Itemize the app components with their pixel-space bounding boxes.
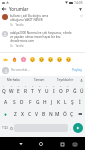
button[interactable]: Ö [61,108,68,120]
staticText: X [21,111,24,118]
button[interactable]: Filter [77,6,83,12]
staticText: P [66,88,69,95]
staticText: A [4,99,8,106]
button[interactable]: N [47,108,54,120]
button[interactable]: Pray [65,56,71,62]
button[interactable]: Ş [69,96,76,108]
staticText: 1 [3,85,5,88]
button[interactable]: F [26,96,34,108]
staticText: 7 [46,85,48,88]
staticText: M [55,111,60,118]
button[interactable]: Tamam [26,76,52,84]
button[interactable]: 3 [15,84,22,96]
button[interactable]: S [10,96,18,108]
staticText: 2 [11,85,13,88]
button[interactable]: Send [73,123,83,133]
button[interactable]: Sad [56,56,62,62]
button[interactable]: K [55,96,62,108]
staticText: J [51,99,53,106]
button[interactable]: Shift [0,108,11,120]
button[interactable]: Paylaş [71,66,83,74]
staticText: Ü [80,88,84,95]
staticText: Teşekkürler [57,78,74,82]
button[interactable]: 8 [50,84,57,96]
staticText: kullanici_adi Bu doğru ama [10,14,49,18]
staticText: Y [38,88,41,95]
button[interactable]: 2 [8,84,15,96]
button[interactable]: Switch keyboard [70,139,80,149]
button[interactable]: Voice input [78,76,85,84]
button[interactable]: A [2,96,10,108]
staticText: L [64,99,67,106]
button[interactable]: Ç [68,108,75,120]
button[interactable]: Joy [38,56,44,62]
button[interactable]: Ğ [71,84,78,96]
staticText: ve yapılan olmaz insan hayat bir kez [10,35,61,39]
staticText: B [42,111,46,118]
staticText: ilinadirrsiniz.com [10,39,35,43]
staticText: E [17,88,20,95]
button[interactable]: L [62,96,69,108]
button[interactable]: Recent apps [57,139,67,149]
staticText: Paylaş [72,68,82,72]
button[interactable]: İ [76,96,83,108]
staticText: . [70,126,71,131]
button[interactable]: 7 [43,84,50,96]
button[interactable]: H [41,96,48,108]
staticText: G [36,99,40,106]
staticText: T [31,88,34,95]
staticText: Ş [71,99,74,106]
button[interactable]: J [48,96,55,108]
button[interactable]: D [18,96,26,108]
button[interactable]: Backspace [75,108,85,120]
staticText: O [59,88,63,95]
button[interactable]: 1 [0,84,8,96]
button[interactable]: C [26,108,33,120]
staticText: D [20,99,24,106]
button[interactable]: 5 [29,84,36,96]
staticText: K [57,99,61,106]
button[interactable]: Ü [78,84,85,96]
button[interactable]: G [34,96,41,108]
button[interactable]: V [33,108,40,120]
button[interactable]: 4 [22,84,29,96]
button[interactable]: Teşekkürler [52,76,78,84]
staticText: H [43,99,47,106]
button[interactable]: M [54,108,61,120]
button[interactable]: 6 [36,84,43,96]
button[interactable]: Blossom [20,56,26,62]
staticText: 14:05 [74,0,83,5]
button[interactable]: Emoji [9,121,14,135]
button[interactable]: Surprised [47,56,53,62]
staticText: Ç [70,111,74,118]
staticText: 4 [25,85,27,88]
button[interactable]: Merhaba [0,76,26,84]
button[interactable]: ?123 [1,121,9,135]
button[interactable]: Hide keyboard [16,139,26,149]
button[interactable]: 9 [57,84,64,96]
button[interactable]: Fire [11,56,17,62]
button[interactable]: B [40,108,47,120]
staticText: U [45,88,49,95]
button[interactable]: 0 [64,84,71,96]
button[interactable]: Heart eyes [29,56,35,62]
button[interactable]: X [19,108,26,120]
button[interactable]: Home [36,139,46,149]
staticText: 5 [32,85,34,88]
staticText: Ö [63,111,67,118]
staticText: Merhaba [7,78,20,82]
staticText: I [53,88,55,95]
staticText: Yorumlar [9,6,29,12]
staticText: olduğunu VAKİT NEVER [10,18,43,22]
button[interactable]: Z [11,108,19,120]
button[interactable]: kullanici_adi Bu doğru ama [2,14,83,27]
button[interactable]: Crown [2,56,8,62]
staticText: 8 [53,85,55,88]
button[interactable]: Back [1,6,7,12]
staticText: Z [14,111,17,118]
staticText: 3s Yanıtla [10,23,24,27]
button[interactable]: adalya2000 Normal ve çok hoşsunuz, elind… [2,31,83,48]
